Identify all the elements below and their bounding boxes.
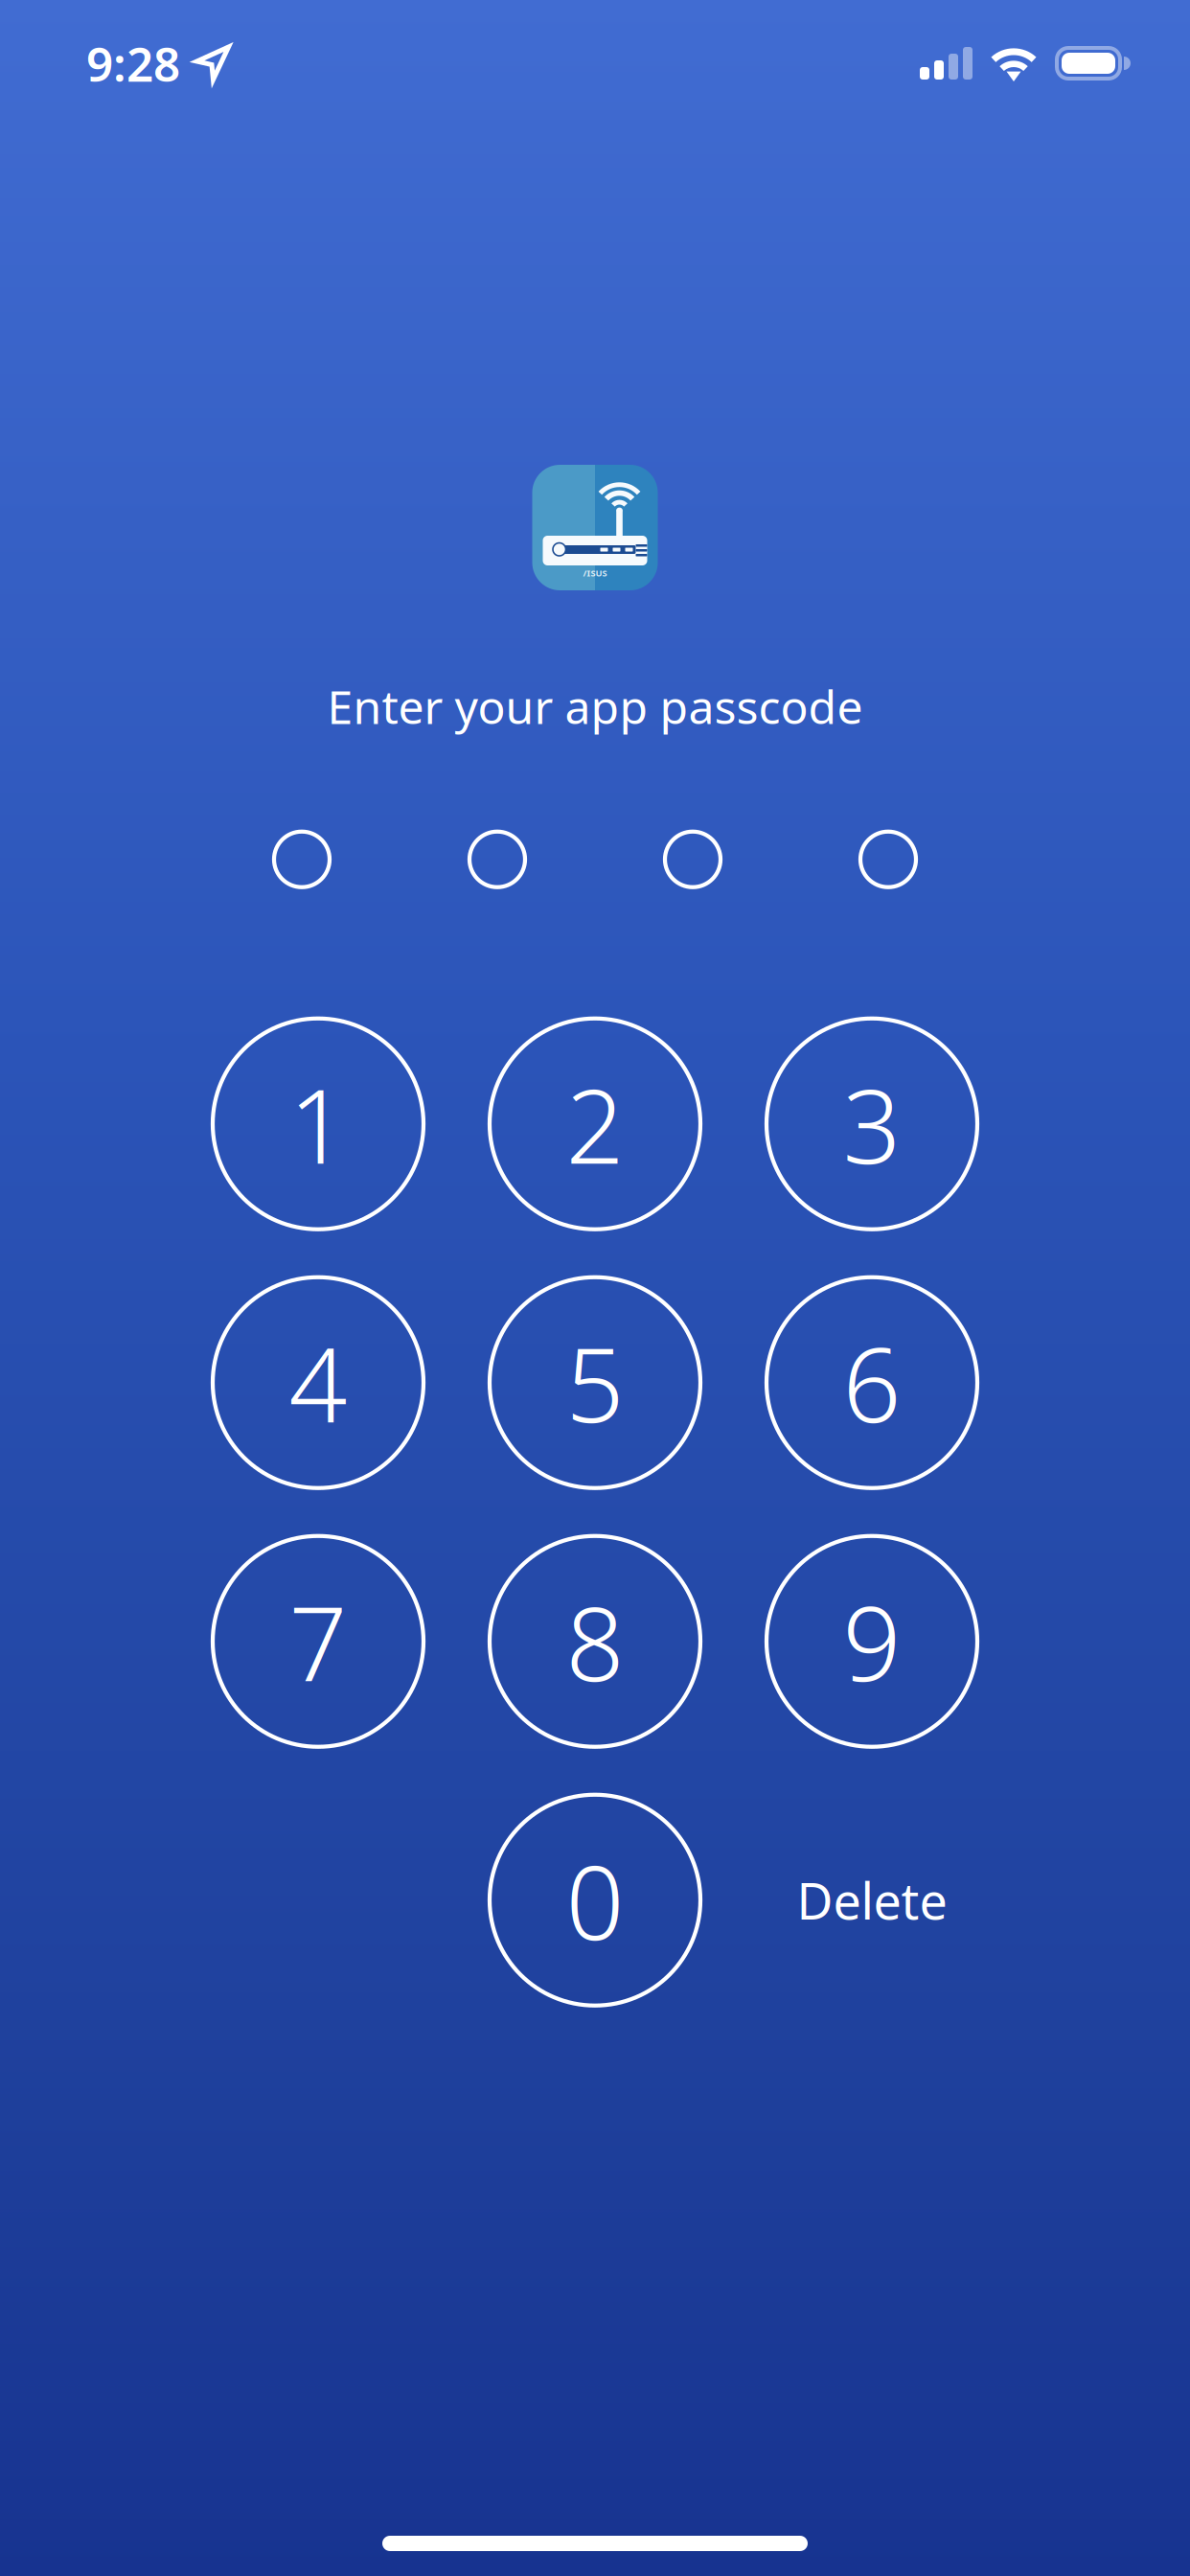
staticText: /ISUS xyxy=(583,567,607,579)
staticText: 0 xyxy=(566,1832,624,1968)
button[interactable]: 2 xyxy=(490,1018,700,1229)
staticText: 4 xyxy=(289,1315,347,1450)
staticText: 7 xyxy=(289,1573,347,1709)
staticText: Enter your app passcode xyxy=(327,676,863,737)
button[interactable]: 3 xyxy=(767,1018,977,1229)
button[interactable]: 5 xyxy=(490,1277,700,1488)
staticText: 8 xyxy=(566,1573,624,1709)
staticText: 9:28 xyxy=(86,32,180,95)
button[interactable]: 9 xyxy=(767,1536,977,1747)
button[interactable]: 0 xyxy=(490,1795,700,2006)
staticText: 5 xyxy=(566,1315,624,1450)
button[interactable]: 4 xyxy=(213,1277,423,1488)
staticText: 1 xyxy=(289,1056,347,1192)
staticText: 6 xyxy=(843,1315,901,1450)
button[interactable]: 6 xyxy=(767,1277,977,1488)
button[interactable]: 7 xyxy=(213,1536,423,1747)
button[interactable]: 1 xyxy=(213,1018,423,1229)
button[interactable]: Delete xyxy=(767,1795,977,2006)
staticText: 3 xyxy=(843,1056,901,1192)
staticText: 9 xyxy=(843,1573,901,1709)
staticText: 2 xyxy=(566,1056,624,1192)
staticText: Delete xyxy=(797,1867,947,1933)
button[interactable]: 8 xyxy=(490,1536,700,1747)
